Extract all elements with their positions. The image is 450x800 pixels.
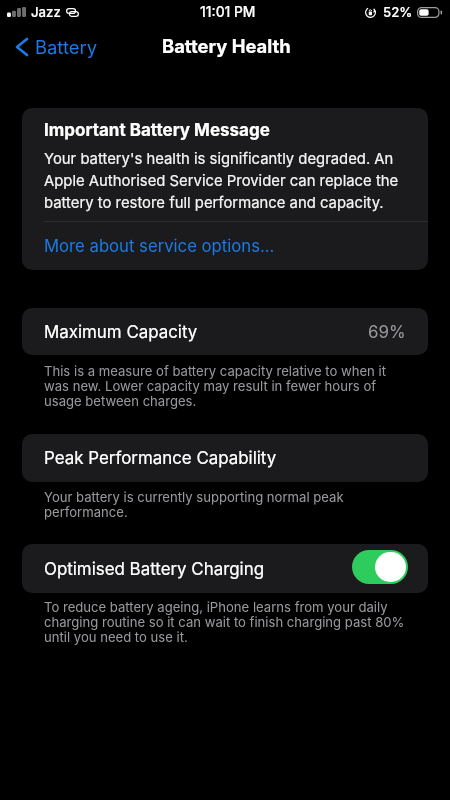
staticText: Important Battery Message [44, 120, 270, 141]
staticText: Battery [35, 36, 98, 58]
staticText: To reduce battery ageing, iPhone learns … [44, 599, 406, 645]
staticText: Your battery is currently supporting nor… [44, 489, 406, 520]
staticText: 11:01 PM [200, 4, 256, 21]
button[interactable]: Maximum Capacity [22, 308, 428, 355]
button[interactable]: More about service options... [22, 222, 428, 270]
staticText: Optimised Battery Charging [44, 559, 265, 579]
button[interactable]: Battery [0, 29, 108, 63]
button[interactable]: Optimised Battery Charging [352, 550, 408, 584]
staticText: This is a measure of battery capacity re… [44, 363, 406, 409]
staticText: 69% [368, 322, 406, 342]
staticText: Your battery's health is significantly d… [44, 150, 406, 212]
staticText: 52% [383, 4, 413, 20]
staticText: Battery Health [162, 35, 291, 57]
staticText: More about service options... [44, 236, 275, 256]
staticText: Maximum Capacity [44, 322, 198, 342]
button[interactable]: Peak Performance Capability [22, 434, 428, 482]
staticText: Peak Performance Capability [44, 448, 277, 468]
staticText: Jazz [31, 4, 61, 20]
